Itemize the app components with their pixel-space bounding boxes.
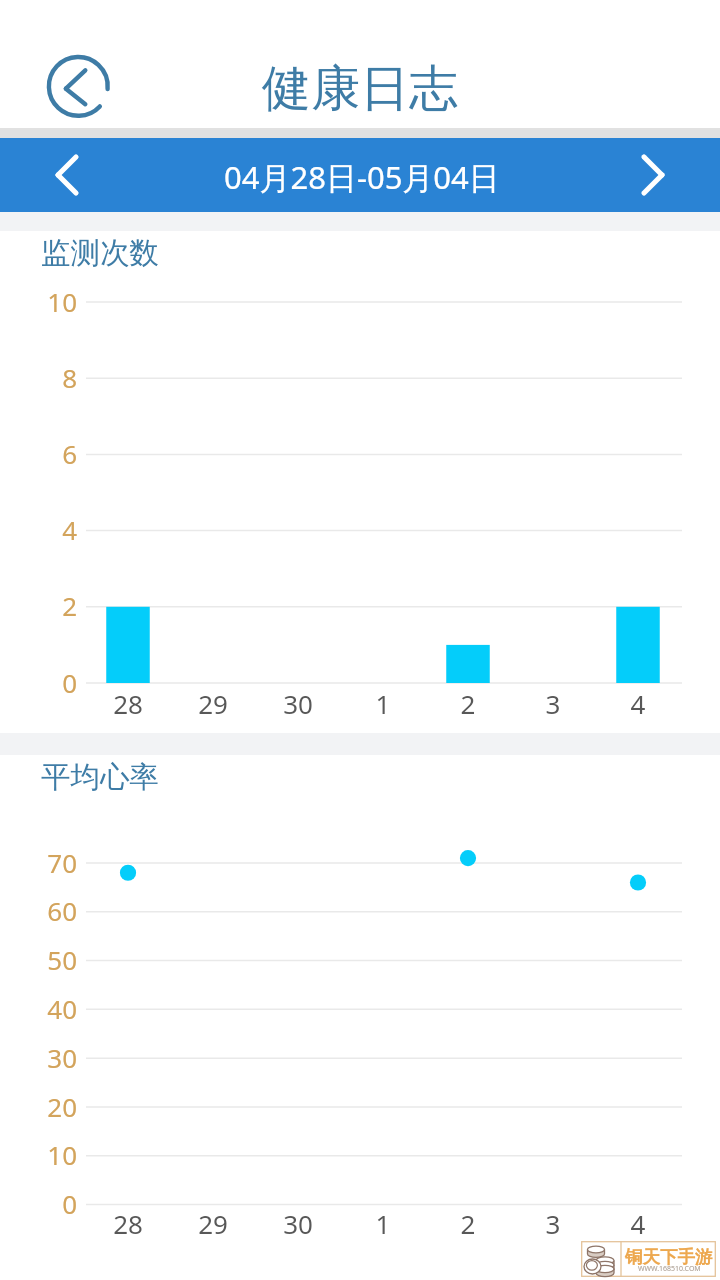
staticText: 60 <box>17 893 77 928</box>
staticText: 30 <box>268 1206 328 1241</box>
staticText: 20 <box>17 1089 77 1124</box>
staticText: 4 <box>608 1206 668 1241</box>
staticText: 50 <box>17 942 77 977</box>
staticText: 铜天下手游 <box>625 1246 713 1268</box>
staticText: 4 <box>608 686 668 721</box>
staticText: 2 <box>438 1206 498 1241</box>
staticText: 2 <box>438 686 498 721</box>
staticText: 2 <box>17 588 77 623</box>
staticText: 8 <box>17 360 77 395</box>
staticText: 6 <box>17 436 77 471</box>
button[interactable]: Previous week <box>20 138 120 212</box>
staticText: 3 <box>523 1206 583 1241</box>
staticText: 1 <box>353 686 413 721</box>
staticText: 1 <box>353 1206 413 1241</box>
staticText: 29 <box>183 686 243 721</box>
staticText: 04月28日-05月04日 <box>224 156 500 198</box>
staticText: 30 <box>268 686 328 721</box>
staticText: 监测次数 <box>41 235 159 272</box>
staticText: 28 <box>98 686 158 721</box>
staticText: 0 <box>17 1186 77 1221</box>
staticText: 29 <box>183 1206 243 1241</box>
staticText: 4 <box>17 512 77 547</box>
staticText: 10 <box>17 1137 77 1172</box>
staticText: 30 <box>17 1040 77 1075</box>
staticText: 平均心率 <box>41 759 159 796</box>
staticText: 28 <box>98 1206 158 1241</box>
staticText: WWW.168510.COM <box>638 1264 701 1274</box>
staticText: 70 <box>17 845 77 880</box>
staticText: 健康日志 <box>262 58 458 120</box>
staticText: 10 <box>17 284 77 319</box>
button[interactable]: Next week <box>600 138 700 212</box>
staticText: 40 <box>17 991 77 1026</box>
staticText: 3 <box>523 686 583 721</box>
button[interactable]: Back <box>44 52 113 121</box>
staticText: 0 <box>17 665 77 700</box>
